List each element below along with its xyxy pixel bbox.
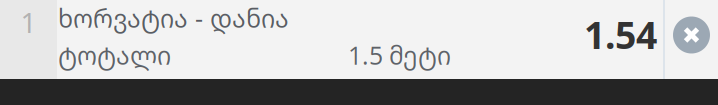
button[interactable]: Remove selection xyxy=(665,0,718,79)
staticText: ხორვატია - დანია xyxy=(58,1,289,35)
staticText: 1.54 xyxy=(584,9,657,60)
staticText: 1 xyxy=(20,3,36,41)
staticText: ტოტალი xyxy=(58,38,171,72)
staticText: 1.5 მეტი xyxy=(348,38,451,72)
